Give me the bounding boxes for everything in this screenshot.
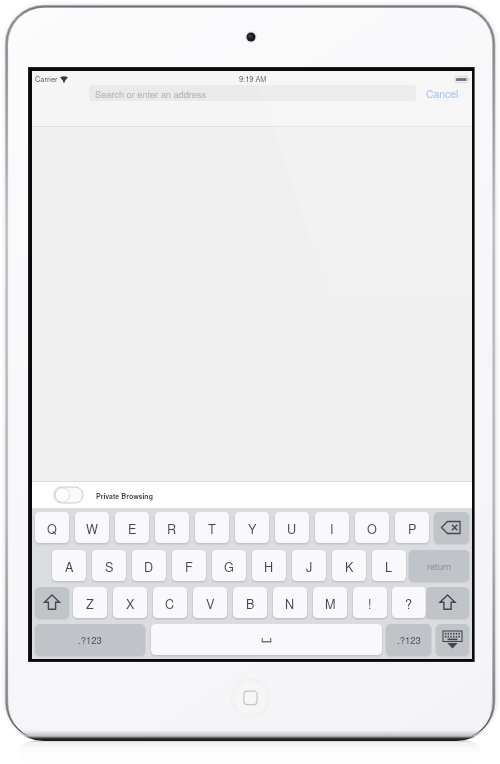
button[interactable]: Private Browsing: [54, 487, 83, 503]
staticText: H: [264, 557, 274, 575]
button[interactable]: E: [115, 512, 149, 543]
staticText: !: [368, 594, 372, 612]
staticText: K: [345, 557, 354, 575]
button[interactable]: Hide keyboard: [436, 624, 469, 655]
button[interactable]: .?123: [386, 624, 431, 655]
staticText: Search or enter an address: [95, 87, 207, 100]
staticText: U: [287, 519, 297, 537]
button[interactable]: L: [372, 550, 406, 581]
staticText: B: [246, 594, 255, 612]
button[interactable]: K: [332, 550, 366, 581]
staticText: Y: [248, 519, 257, 537]
button[interactable]: M: [313, 587, 347, 618]
staticText: Z: [86, 594, 94, 612]
button[interactable]: D: [132, 550, 166, 581]
staticText: .?123: [78, 633, 102, 647]
button[interactable]: T: [195, 512, 229, 543]
button[interactable]: N: [273, 587, 307, 618]
staticText: S: [105, 557, 114, 575]
button[interactable]: R: [155, 512, 189, 543]
button[interactable]: F: [172, 550, 206, 581]
button[interactable]: V: [193, 587, 227, 618]
button[interactable]: Z: [73, 587, 107, 618]
staticText: M: [325, 594, 336, 612]
staticText: Q: [47, 519, 57, 537]
button[interactable]: S: [92, 550, 126, 581]
button[interactable]: Y: [235, 512, 269, 543]
button[interactable]: X: [113, 587, 147, 618]
staticText: O: [367, 519, 377, 537]
staticText: .?123: [397, 633, 421, 647]
staticText: L: [385, 557, 393, 575]
staticText: D: [144, 557, 154, 575]
button[interactable]: H: [252, 550, 286, 581]
button[interactable]: Shift: [426, 587, 469, 618]
staticText: X: [126, 594, 135, 612]
button[interactable]: A: [52, 550, 86, 581]
button[interactable]: W: [75, 512, 109, 543]
staticText: W: [86, 519, 98, 537]
staticText: ?: [405, 594, 413, 612]
staticText: A: [65, 557, 74, 575]
button[interactable]: C: [153, 587, 187, 618]
button[interactable]: P: [395, 512, 429, 543]
button[interactable]: O: [355, 512, 389, 543]
staticText: J: [306, 557, 313, 575]
staticText: I: [330, 519, 334, 537]
staticText: T: [208, 519, 216, 537]
button[interactable]: !: [353, 587, 387, 618]
staticText: E: [128, 519, 137, 537]
staticText: C: [165, 594, 175, 612]
staticText: P: [408, 519, 417, 537]
button[interactable]: .?123: [35, 624, 145, 655]
staticText: N: [285, 594, 295, 612]
button[interactable]: U: [275, 512, 309, 543]
button[interactable]: J: [292, 550, 326, 581]
staticText: Cancel: [426, 86, 459, 101]
button[interactable]: G: [212, 550, 246, 581]
button[interactable]: Backspace: [434, 512, 469, 543]
button[interactable]: ?: [392, 587, 426, 618]
staticText: Carrier: [35, 74, 58, 85]
staticText: Private Browsing: [96, 491, 153, 501]
button[interactable]: return: [409, 550, 469, 581]
staticText: F: [185, 557, 193, 575]
staticText: V: [206, 594, 215, 612]
button[interactable]: Search or enter an address: [89, 85, 416, 101]
staticText: 9:19 AM: [239, 74, 267, 85]
button[interactable]: Space: [151, 624, 382, 655]
staticText: R: [167, 519, 177, 537]
staticText: return: [427, 559, 452, 572]
button[interactable]: Cancel: [421, 83, 463, 103]
staticText: G: [224, 557, 234, 575]
button[interactable]: B: [233, 587, 267, 618]
button[interactable]: Q: [35, 512, 69, 543]
button[interactable]: I: [315, 512, 349, 543]
button[interactable]: Shift: [35, 587, 69, 618]
